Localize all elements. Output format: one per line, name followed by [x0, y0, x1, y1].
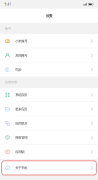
staticText: 应用双开: [15, 121, 27, 125]
button[interactable]: 更多应用: [0, 102, 98, 116]
button[interactable]: 系统应用: [0, 88, 98, 102]
staticText: 同步: [15, 67, 21, 72]
staticText: 授权管理: [15, 135, 27, 140]
staticText: 关于手机: [15, 166, 27, 170]
button[interactable]: 同步: [0, 62, 98, 77]
staticText: 其他账号: [15, 53, 27, 57]
staticText: 设置: [46, 14, 52, 18]
staticText: 系统应用: [15, 93, 27, 97]
button[interactable]: 其他账号: [0, 48, 98, 62]
staticText: 应用锁: [15, 150, 24, 154]
button[interactable]: 授权管理: [0, 130, 98, 145]
staticText: 更多应用: [15, 107, 27, 111]
staticText: 9:41: [5, 2, 12, 6]
staticText: 账号: [5, 27, 11, 30]
staticText: 小米账号: [15, 39, 27, 43]
button[interactable]: 应用锁: [0, 145, 98, 159]
button[interactable]: 应用双开: [0, 116, 98, 130]
button[interactable]: 小米账号: [0, 34, 98, 48]
staticText: 应用管理: [5, 80, 17, 84]
button[interactable]: 关于手机: [0, 161, 98, 175]
